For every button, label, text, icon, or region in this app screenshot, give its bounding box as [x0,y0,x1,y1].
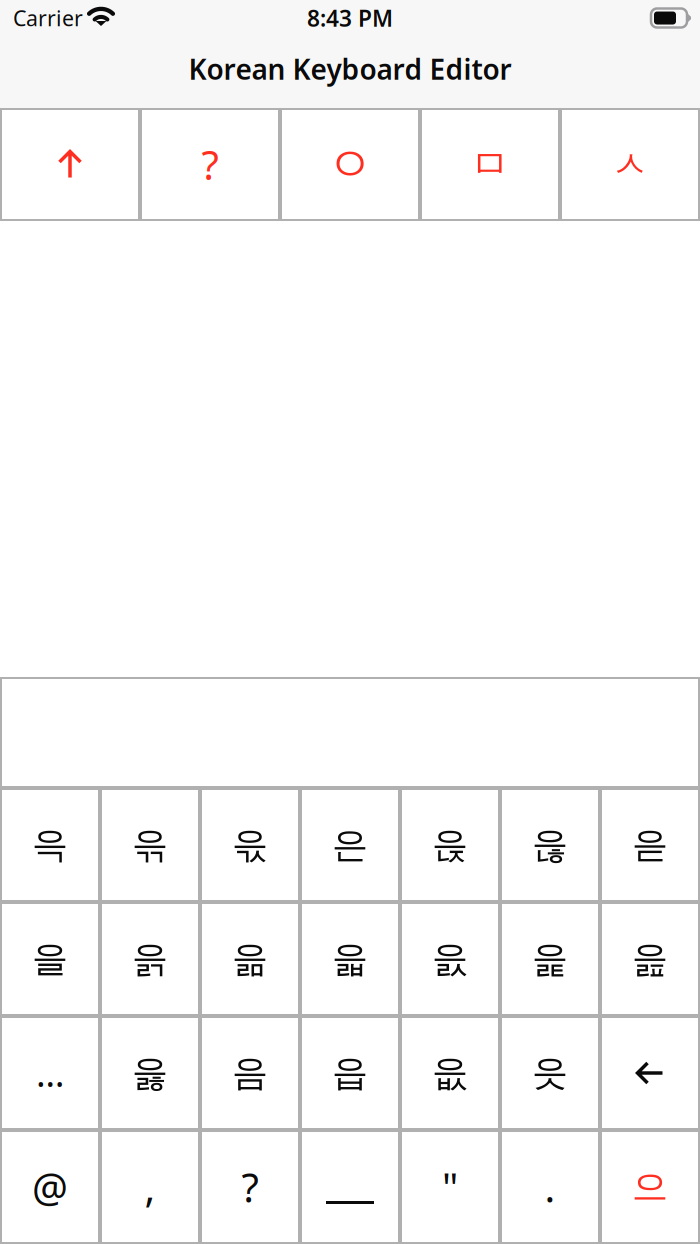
button[interactable]: ㅇ [280,108,420,221]
staticText: 윽 [32,823,68,867]
staticText: 음 [232,1051,268,1095]
staticText: 읍 [332,1051,368,1095]
staticText: 읁 [432,823,468,867]
staticText: @ [32,1160,68,1213]
button[interactable]: … [0,1016,100,1130]
button[interactable]: 읁 [400,788,500,902]
staticText: 읆 [232,937,268,981]
button[interactable]: 읋 [100,1016,200,1130]
button[interactable]: 윿 [200,788,300,902]
button[interactable]: 읃 [600,788,700,902]
staticText: ? [241,1160,258,1213]
button[interactable]: 읍 [300,1016,400,1130]
button[interactable]: 읆 [200,902,300,1016]
staticText: Carrier [13,4,83,32]
staticText: 읋 [132,1051,168,1095]
staticText: 읈 [432,937,468,981]
button[interactable]: . [500,1130,600,1244]
staticText: 으 [632,1165,668,1209]
staticText: 을 [32,937,68,981]
button[interactable]: " [400,1130,500,1244]
button[interactable]: ㅅ [560,108,700,221]
staticText: 8:43 PM [307,3,393,33]
button[interactable]: 으 [600,1130,700,1244]
button[interactable]: 읇 [300,902,400,1016]
staticText: 은 [332,823,368,867]
staticText: Korean Keyboard Editor [188,50,511,88]
button[interactable]: 읅 [100,902,200,1016]
staticText: 읂 [532,823,568,867]
button[interactable]: 읈 [400,902,500,1016]
staticText: 윿 [232,823,268,867]
staticText: 읉 [532,937,568,981]
button[interactable]: 읊 [600,902,700,1016]
staticText: 읊 [632,937,668,981]
staticText: " [442,1160,458,1213]
button[interactable]: 을 [0,902,100,1016]
button[interactable]: Space [300,1130,400,1244]
staticText: ? [201,138,218,191]
button[interactable]: 읏 [500,1016,600,1130]
staticText: , [144,1160,155,1213]
button[interactable]: 음 [200,1016,300,1130]
button[interactable]: , [100,1130,200,1244]
button[interactable]: 윽 [0,788,100,902]
staticText: ㅁ [470,140,510,189]
staticText: 윾 [132,823,168,867]
button[interactable]: 윾 [100,788,200,902]
button[interactable]: 읉 [500,902,600,1016]
staticText: ㅅ [611,142,648,187]
button[interactable]: 읎 [400,1016,500,1130]
staticText: 읇 [332,937,368,981]
button[interactable]: ㅁ [420,108,560,221]
staticText: 읅 [132,937,168,981]
staticText: … [36,1049,64,1097]
button[interactable]: ? [200,1130,300,1244]
button[interactable]: Delete [600,1016,700,1130]
button[interactable]: Shift [0,108,140,221]
staticText: ㅇ [326,135,374,194]
staticText: . [544,1160,555,1213]
staticText: 읃 [632,823,668,867]
button[interactable]: @ [0,1130,100,1244]
staticText: 읏 [532,1051,568,1095]
staticText: 읎 [432,1051,468,1095]
button[interactable]: 읂 [500,788,600,902]
button[interactable]: 은 [300,788,400,902]
button[interactable]: ? [140,108,280,221]
